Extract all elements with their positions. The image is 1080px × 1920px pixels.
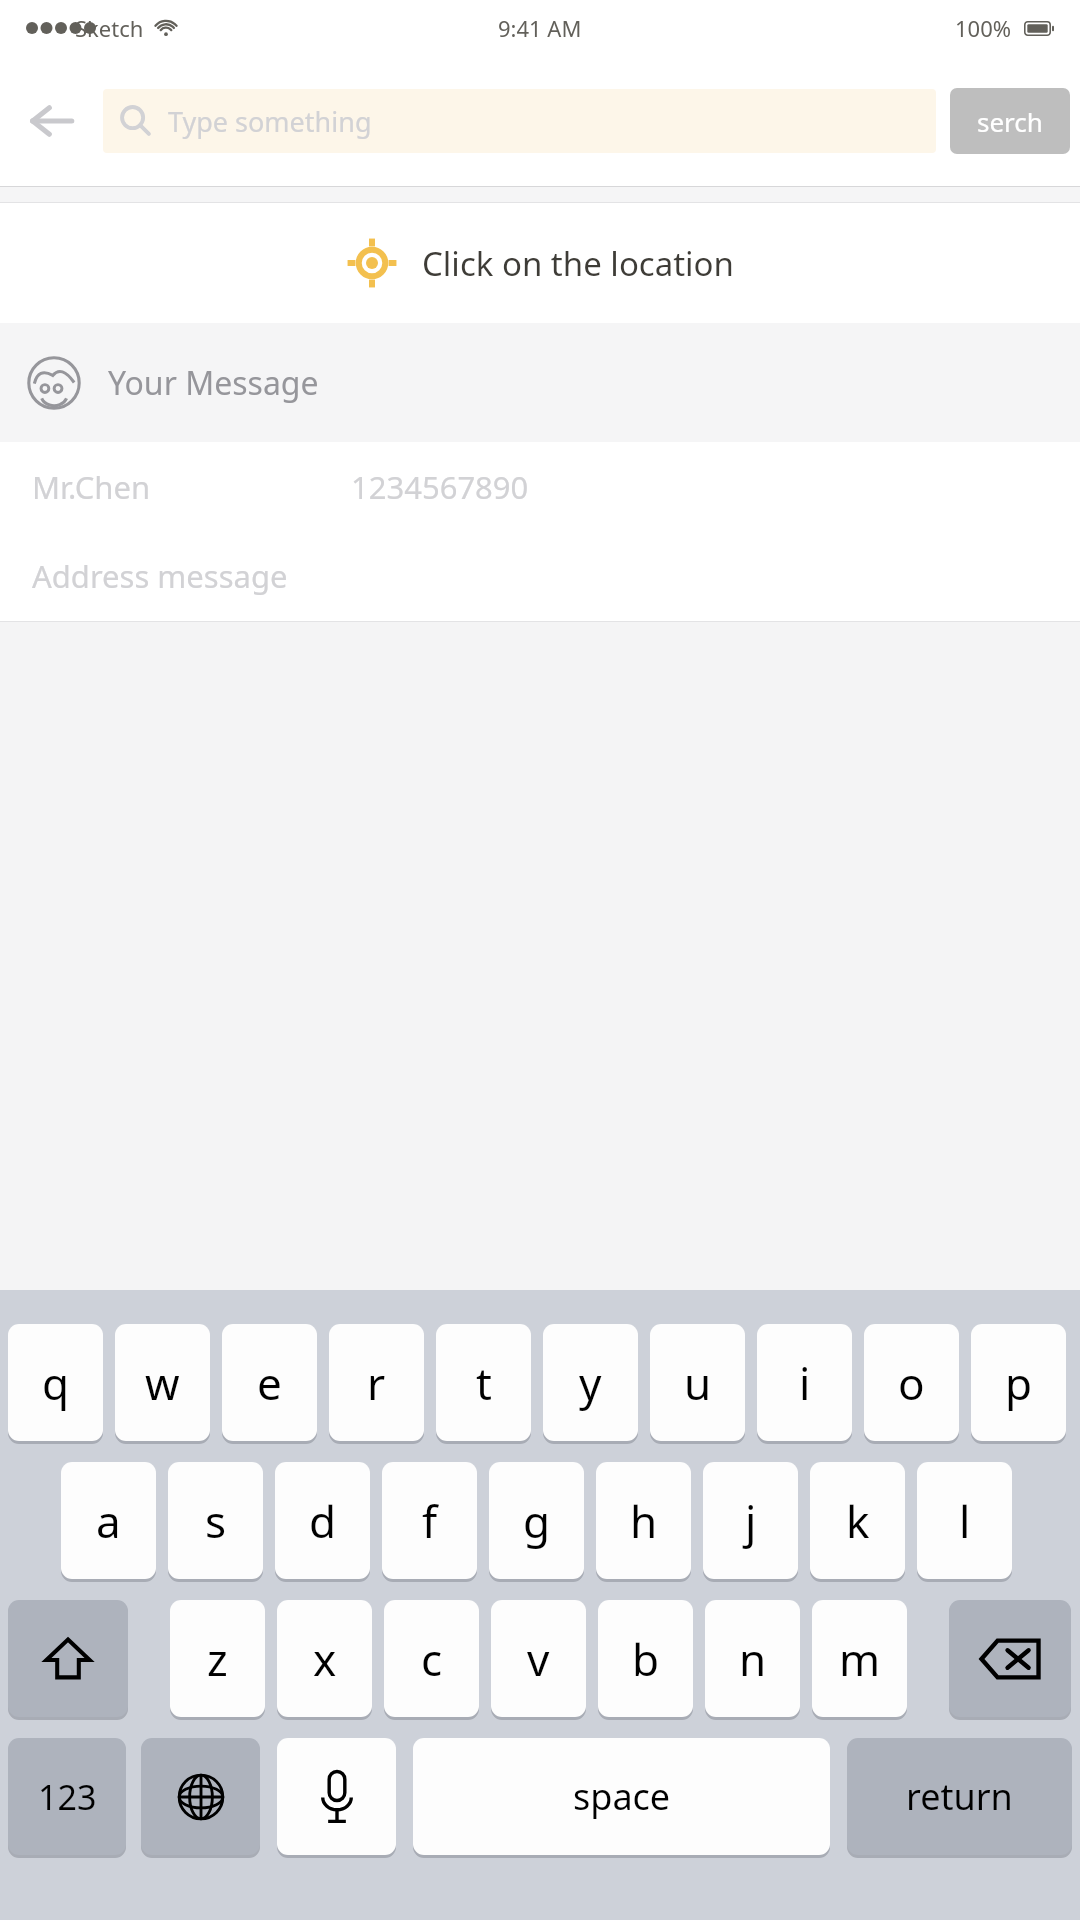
staticText: 9:41 AM <box>498 13 582 43</box>
button[interactable]: c <box>384 1600 479 1717</box>
staticText: return <box>906 1772 1013 1821</box>
staticText: e <box>257 1353 282 1413</box>
staticText: f <box>422 1491 438 1551</box>
staticText: n <box>739 1629 767 1689</box>
button[interactable]: x <box>277 1600 372 1717</box>
button[interactable]: t <box>436 1324 531 1441</box>
button[interactable]: b <box>598 1600 693 1717</box>
staticText: 100% <box>955 13 1012 43</box>
button[interactable]: p <box>971 1324 1066 1441</box>
staticText: r <box>367 1353 386 1413</box>
button[interactable]: d <box>275 1462 370 1579</box>
button[interactable]: Backspace <box>949 1600 1071 1717</box>
button[interactable]: Dictate <box>277 1738 396 1855</box>
staticText: g <box>523 1491 551 1551</box>
staticText: q <box>42 1353 70 1413</box>
button[interactable]: i <box>757 1324 852 1441</box>
staticText: z <box>207 1629 228 1689</box>
button[interactable]: Shift <box>8 1600 128 1717</box>
button[interactable]: Change keyboard <box>141 1738 260 1855</box>
staticText: w <box>145 1353 180 1413</box>
button[interactable]: f <box>382 1462 477 1579</box>
staticText: h <box>630 1491 658 1551</box>
staticText: i <box>799 1353 811 1413</box>
button[interactable]: j <box>703 1462 798 1579</box>
staticText: x <box>313 1629 337 1689</box>
staticText: u <box>684 1353 712 1413</box>
button[interactable]: r <box>329 1324 424 1441</box>
staticText: serch <box>977 104 1043 139</box>
button[interactable]: v <box>491 1600 586 1717</box>
staticText: b <box>632 1629 660 1689</box>
button[interactable]: y <box>543 1324 638 1441</box>
staticText: m <box>839 1629 881 1689</box>
button[interactable]: serch <box>950 88 1070 154</box>
button[interactable]: n <box>705 1600 800 1717</box>
staticText: c <box>421 1629 443 1689</box>
staticText: Sketch <box>75 13 144 43</box>
button[interactable]: k <box>810 1462 905 1579</box>
button[interactable]: g <box>489 1462 584 1579</box>
staticText: j <box>745 1491 757 1551</box>
button[interactable]: l <box>917 1462 1012 1579</box>
staticText: d <box>309 1491 337 1551</box>
button[interactable]: o <box>864 1324 959 1441</box>
staticText: Your Message <box>108 361 319 405</box>
staticText: y <box>579 1353 602 1413</box>
staticText: 123 <box>38 1774 97 1820</box>
staticText: Click on the location <box>422 241 734 286</box>
staticText: v <box>527 1629 550 1689</box>
staticText: l <box>959 1491 971 1551</box>
staticText: Address message <box>32 555 288 597</box>
staticText: s <box>205 1491 227 1551</box>
button[interactable]: Back <box>10 79 94 163</box>
button[interactable]: Type something <box>103 89 936 153</box>
staticText: k <box>846 1491 870 1551</box>
button[interactable]: Mr.Chen <box>0 442 1080 531</box>
button[interactable]: z <box>170 1600 265 1717</box>
button[interactable]: m <box>812 1600 907 1717</box>
button[interactable]: 123 <box>8 1738 126 1855</box>
button[interactable]: space <box>413 1738 830 1855</box>
staticText: 1234567890 <box>351 466 529 508</box>
button[interactable]: Address message <box>0 531 1080 621</box>
button[interactable]: h <box>596 1462 691 1579</box>
button[interactable]: return <box>847 1738 1072 1855</box>
staticText: a <box>96 1491 121 1551</box>
button[interactable]: w <box>115 1324 210 1441</box>
staticText: o <box>898 1353 925 1413</box>
button[interactable]: u <box>650 1324 745 1441</box>
staticText: t <box>476 1353 492 1413</box>
button[interactable]: e <box>222 1324 317 1441</box>
button[interactable]: s <box>168 1462 263 1579</box>
button[interactable]: a <box>61 1462 156 1579</box>
staticText: Mr.Chen <box>32 466 151 508</box>
button[interactable]: Click on the location <box>0 203 1080 323</box>
staticText: p <box>1005 1353 1033 1413</box>
staticText: Type something <box>168 103 372 140</box>
button[interactable]: Your Message <box>0 323 1080 442</box>
button[interactable]: q <box>8 1324 103 1441</box>
staticText: space <box>573 1772 671 1821</box>
